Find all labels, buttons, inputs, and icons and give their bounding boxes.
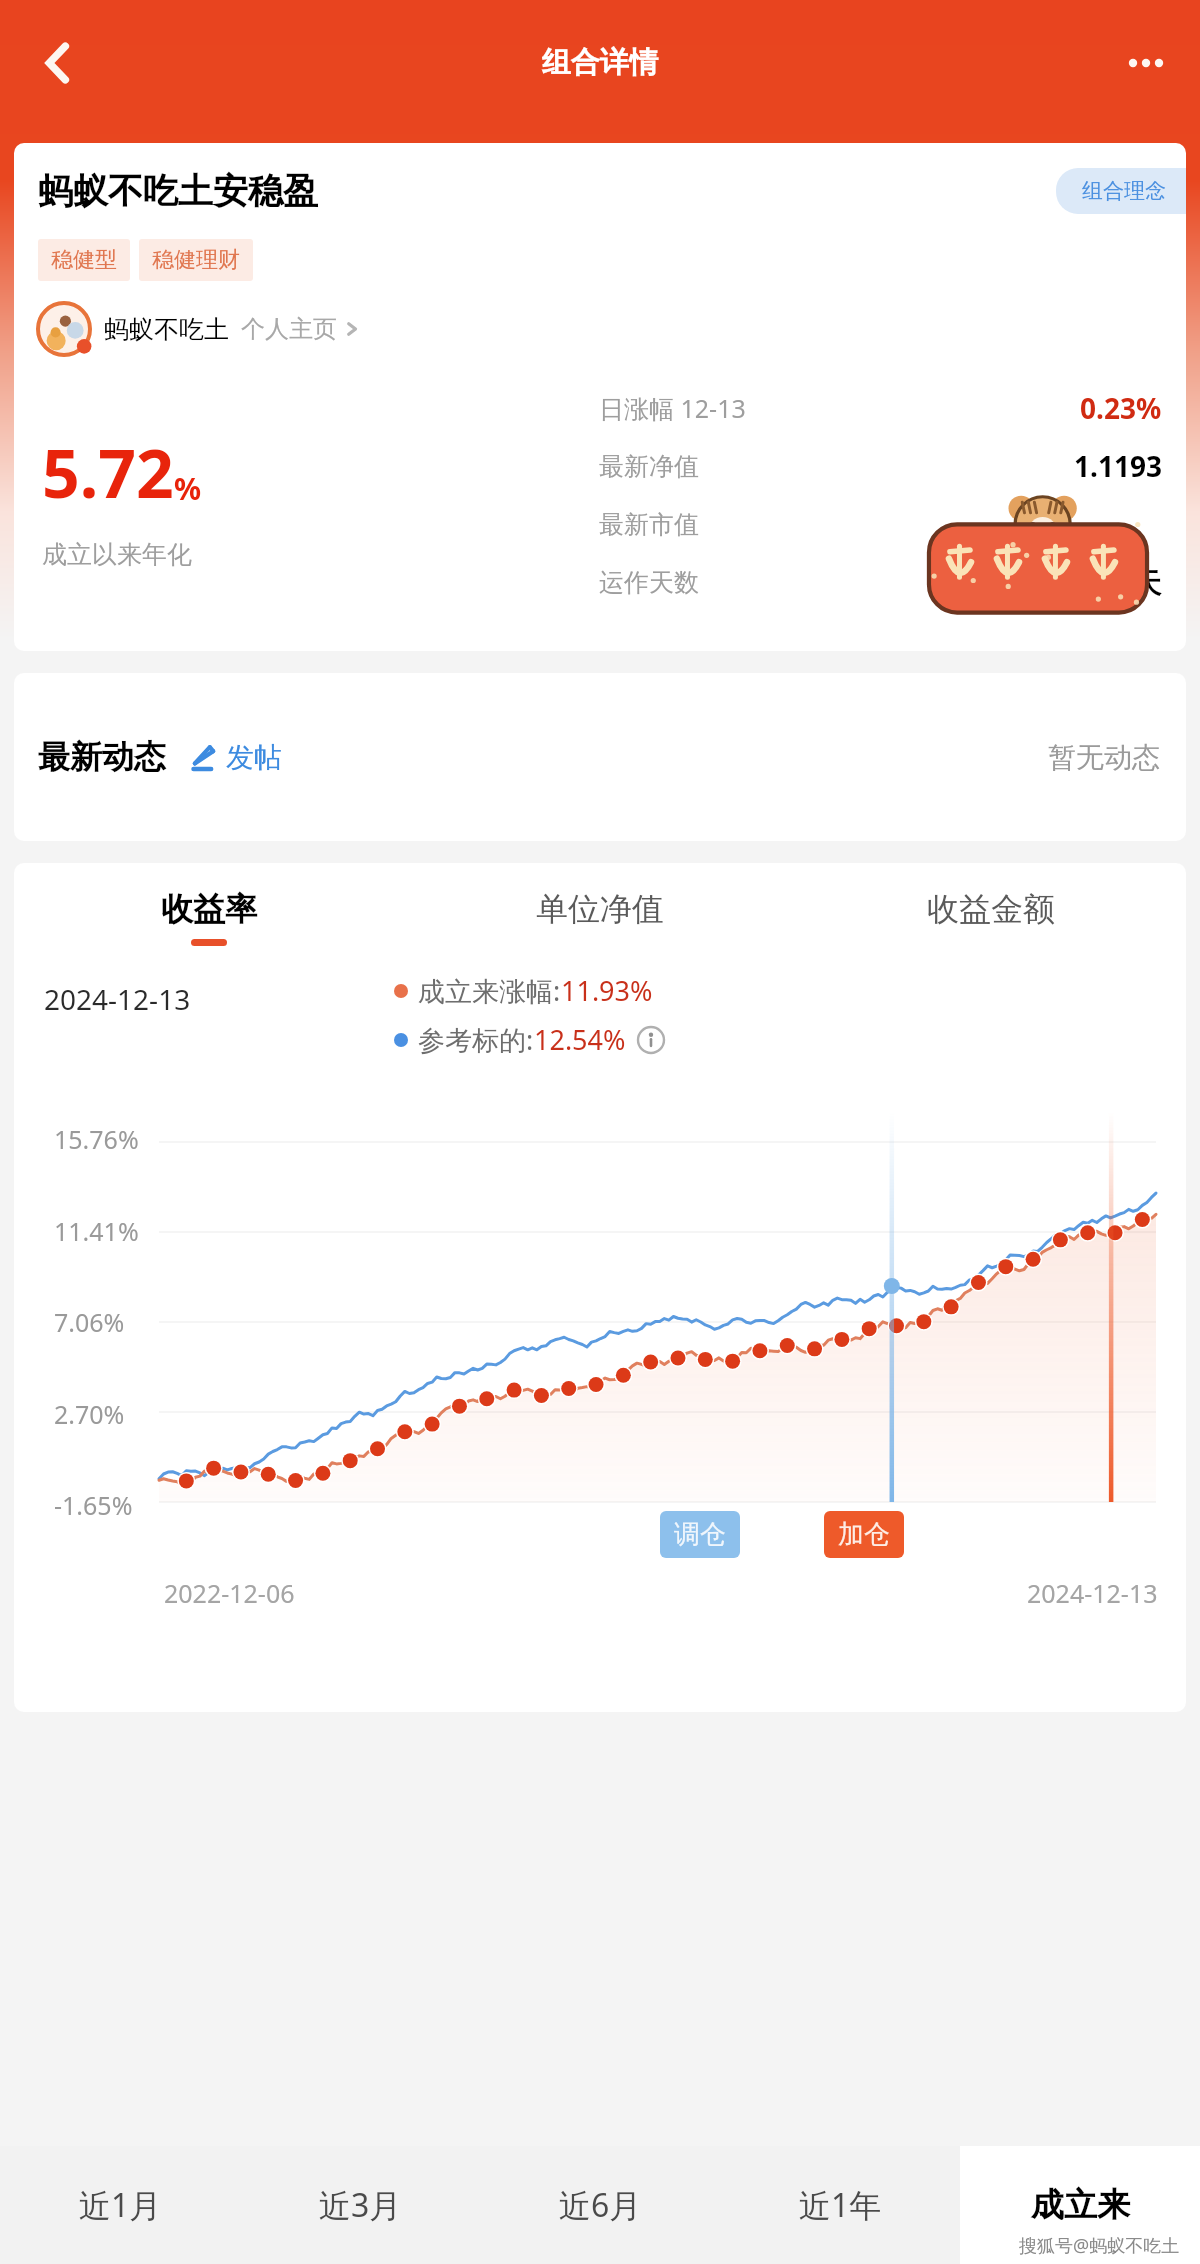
- button[interactable]: 组合理念: [1056, 168, 1186, 214]
- staticText: 调仓: [674, 1518, 726, 1551]
- staticText: 1.1193: [1074, 447, 1162, 485]
- staticText: 2024-12-13: [1027, 1576, 1158, 1610]
- staticText: 收益率: [161, 889, 257, 929]
- staticText: 发帖: [226, 740, 282, 775]
- staticText: 近1年: [799, 2183, 882, 2227]
- staticText: 最新市值: [599, 509, 699, 540]
- staticText: 日涨幅 12-13: [599, 391, 746, 425]
- staticText: 2022-12-06: [164, 1576, 295, 1610]
- staticText: 近3月: [319, 2183, 402, 2227]
- staticText: 7.06%: [54, 1305, 125, 1339]
- staticText: 最新动态: [38, 737, 166, 777]
- staticText: 组合理念: [1082, 178, 1166, 204]
- staticText: 单位净值: [536, 889, 664, 929]
- button[interactable]: 收益率: [14, 889, 404, 946]
- button[interactable]: Back: [26, 35, 82, 91]
- staticText: 蚂蚁不吃土: [104, 314, 229, 345]
- staticText: 参考标的:: [418, 1021, 534, 1058]
- staticText: %: [174, 468, 202, 509]
- button[interactable]: 近1年: [720, 2146, 960, 2264]
- button[interactable]: 近6月: [480, 2146, 720, 2264]
- button[interactable]: 稳健型: [38, 239, 130, 281]
- staticText: 成立以来年化: [42, 539, 192, 570]
- button[interactable]: More options: [1118, 35, 1174, 91]
- staticText: 搜狐号@蚂蚁不吃土: [1019, 2233, 1180, 2258]
- staticText: 运作天数: [599, 567, 699, 598]
- button[interactable]: 收益金额: [795, 889, 1186, 946]
- staticText: 近6月: [559, 2183, 642, 2227]
- staticText: 加仓: [838, 1518, 890, 1551]
- staticText: 740天: [1085, 563, 1162, 601]
- staticText: 11.93%: [561, 972, 653, 1009]
- staticText: 蚂蚁不吃土安稳盈: [38, 169, 318, 213]
- button[interactable]: 加仓: [824, 1511, 904, 1558]
- staticText: 成立来: [1031, 2184, 1130, 2226]
- staticText: 11.41%: [54, 1214, 139, 1248]
- staticText: 组合详情: [542, 44, 658, 81]
- staticText: 个人主页: [241, 314, 337, 344]
- staticText: 收益金额: [927, 889, 1055, 929]
- staticText: 2024-12-13: [44, 980, 191, 1018]
- button[interactable]: 稳健理财: [139, 239, 253, 281]
- staticText: 15.76%: [54, 1122, 139, 1156]
- staticText: 5.72: [42, 427, 174, 517]
- staticText: 0.23%: [1080, 389, 1162, 427]
- button[interactable]: 发帖: [186, 740, 282, 775]
- button[interactable]: 近3月: [240, 2146, 480, 2264]
- staticText: 近1月: [79, 2183, 162, 2227]
- staticText: 12.54%: [534, 1021, 626, 1058]
- staticText: 暂无动态: [1048, 740, 1160, 775]
- button[interactable]: 调仓: [660, 1511, 740, 1558]
- staticText: 最新净值: [599, 451, 699, 482]
- staticText: 成立来涨幅:: [418, 972, 561, 1009]
- staticText: -1.65%: [54, 1488, 133, 1522]
- button[interactable]: 蚂蚁不吃土: [36, 301, 363, 357]
- button[interactable]: Info: [636, 1025, 666, 1055]
- button[interactable]: 单位净值: [404, 889, 795, 946]
- button[interactable]: 成立来: [960, 2146, 1200, 2264]
- staticText: 2.70%: [54, 1397, 125, 1431]
- button[interactable]: 近1月: [0, 2146, 240, 2264]
- staticText: 稳健型: [51, 246, 117, 274]
- staticText: 稳健理财: [152, 246, 240, 274]
